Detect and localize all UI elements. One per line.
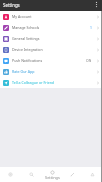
button[interactable]: Search: [21, 167, 42, 182]
staticText: ON: [86, 58, 92, 63]
button[interactable]: Tell a Colleague or Friend: [0, 77, 102, 88]
button[interactable]: Manage Schools: [0, 22, 102, 33]
button[interactable]: Device Integration: [0, 44, 102, 55]
staticText: Tell a Colleague or Friend: [12, 80, 55, 85]
button[interactable]: Tools: [62, 167, 82, 182]
staticText: Device Integration: [12, 47, 43, 52]
staticText: Rate Our App: [12, 69, 35, 74]
button[interactable]: Rate Our App: [0, 66, 102, 77]
staticText: Manage Schools: [12, 25, 40, 30]
button[interactable]: General Settings: [0, 33, 102, 44]
staticText: 1: [90, 25, 92, 30]
button[interactable]: My Account: [0, 11, 102, 22]
staticText: My Account: [12, 14, 32, 19]
staticText: General Settings: [12, 36, 40, 41]
button[interactable]: Profile: [82, 167, 102, 182]
button[interactable]: Home: [0, 167, 21, 182]
staticText: Push Notifications: [12, 58, 43, 63]
staticText: Settings: [3, 2, 20, 8]
button[interactable]: More options: [91, 0, 102, 11]
button[interactable]: Push Notifications: [0, 55, 102, 66]
staticText: Settings: [45, 175, 60, 180]
button[interactable]: Settings: [42, 167, 62, 182]
